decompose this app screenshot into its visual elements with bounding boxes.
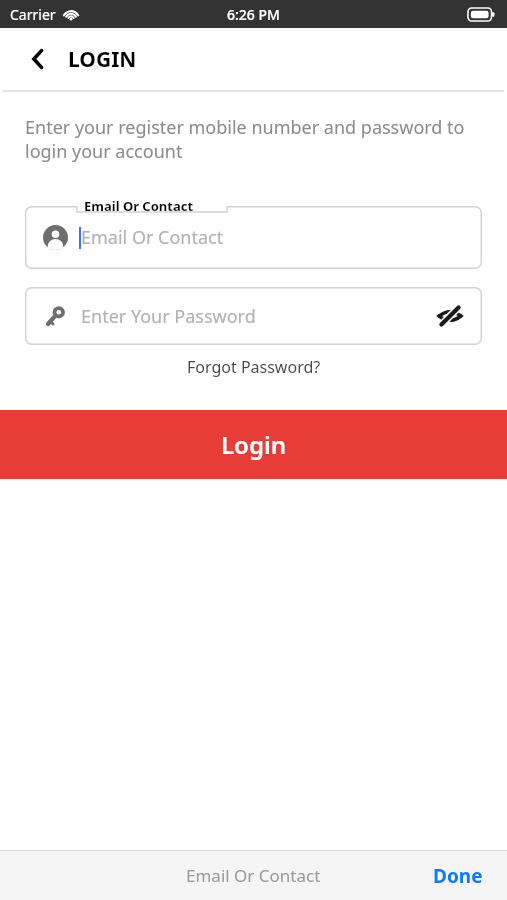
staticText: Done [433, 863, 483, 889]
staticText: Email Or Contact [81, 225, 224, 250]
button[interactable]: Back [18, 39, 58, 79]
staticText: Email Or Contact [84, 197, 194, 215]
button[interactable]: Done [423, 859, 493, 893]
staticText: LOGIN [68, 45, 137, 74]
staticText: Login [221, 428, 287, 461]
staticText: 6:26 PM [227, 5, 280, 24]
staticText: Enter your register mobile number and pa… [25, 115, 483, 163]
staticText: Enter Your Password [81, 304, 256, 329]
button[interactable]: Email Or Contact [25, 197, 482, 269]
staticText: Email Or Contact [186, 864, 321, 887]
button[interactable]: Show password [432, 298, 468, 334]
button[interactable]: Forgot Password? [0, 356, 507, 378]
button[interactable]: Login [0, 410, 507, 479]
staticText: Carrier [10, 5, 56, 24]
staticText: Forgot Password? [187, 356, 321, 378]
button[interactable]: Enter Your Password [25, 287, 482, 345]
